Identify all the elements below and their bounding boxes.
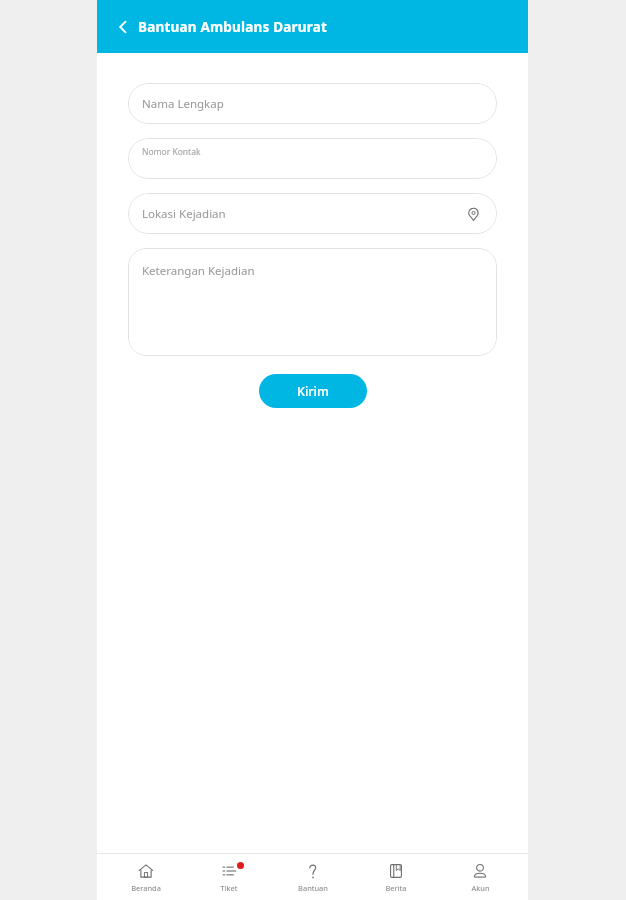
button[interactable]: Akun — [445, 858, 515, 897]
button[interactable]: Pilih lokasi — [461, 202, 485, 226]
staticText: Akun — [471, 883, 490, 893]
button[interactable]: Nama Lengkap — [128, 83, 497, 124]
button[interactable]: Beranda — [111, 858, 181, 897]
staticText: Bantuan Ambulans Darurat — [138, 18, 328, 36]
button[interactable]: Nomor Kontak — [128, 138, 497, 179]
button[interactable]: Lokasi Kejadian — [128, 193, 497, 234]
button[interactable]: Berita — [361, 858, 431, 897]
staticText: Nomor Kontak — [142, 146, 201, 158]
button[interactable]: Kembali — [111, 15, 135, 39]
staticText: Beranda — [131, 883, 161, 893]
button[interactable]: Bantuan — [278, 858, 348, 897]
button[interactable]: Keterangan Kejadian — [128, 248, 497, 356]
button[interactable]: Kirim — [259, 374, 367, 408]
staticText: Bantuan — [298, 883, 328, 893]
button[interactable]: Tiket — [194, 858, 264, 897]
staticText: Tiket — [220, 883, 238, 893]
staticText: Berita — [385, 883, 407, 893]
staticText: Nama Lengkap — [142, 96, 224, 112]
staticText: Lokasi Kejadian — [142, 206, 226, 222]
staticText: Kirim — [297, 383, 329, 400]
staticText: Keterangan Kejadian — [142, 263, 255, 279]
